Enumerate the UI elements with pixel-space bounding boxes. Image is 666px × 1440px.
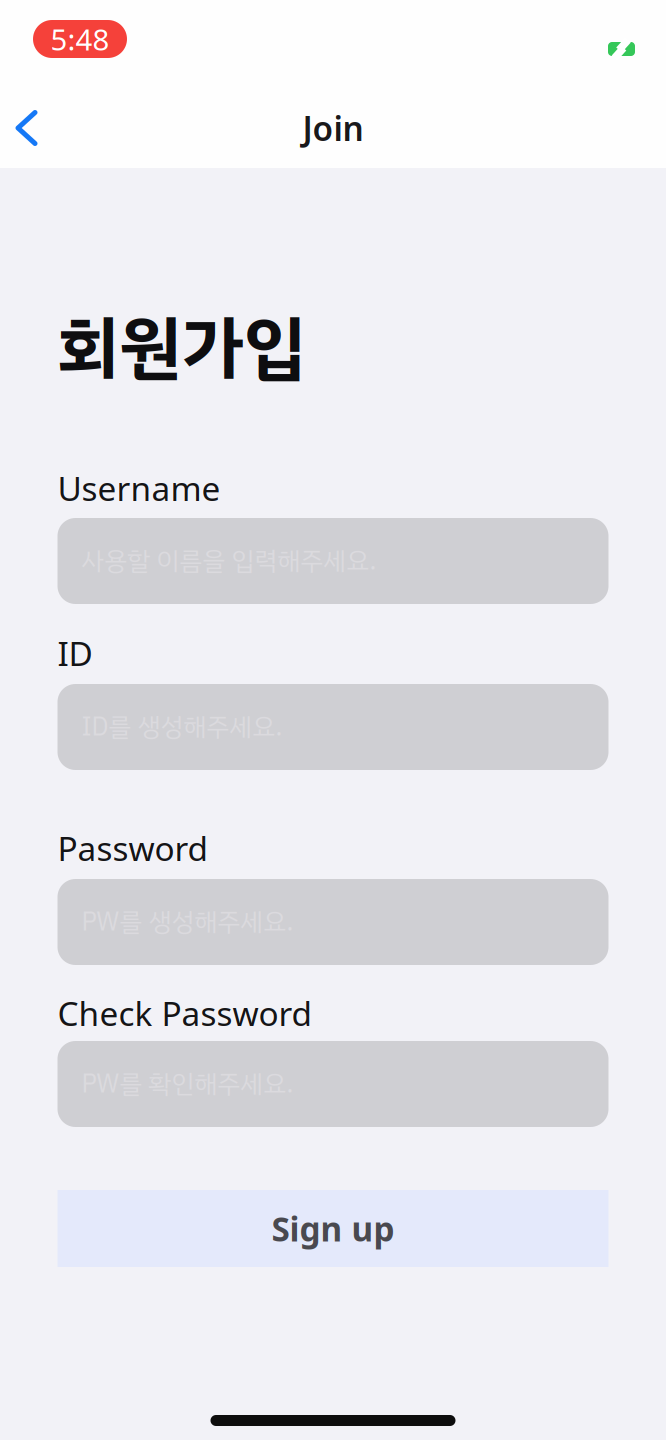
staticText: ID를 생성해주세요.: [81, 708, 282, 746]
button[interactable]: Back: [0, 110, 39, 146]
button[interactable]: 사용할 이름을 입력해주세요.: [57, 518, 608, 604]
staticText: PW를 생성해주세요.: [81, 903, 293, 941]
staticText: ID: [57, 631, 92, 675]
staticText: PW를 확인해주세요.: [81, 1065, 293, 1103]
button[interactable]: Sign up: [57, 1190, 608, 1267]
staticText: Username: [57, 466, 220, 510]
staticText: 사용할 이름을 입력해주세요.: [81, 542, 376, 580]
staticText: Check Password: [57, 991, 312, 1035]
staticText: Sign up: [271, 1206, 394, 1251]
staticText: Password: [57, 826, 208, 870]
staticText: 5:48: [50, 19, 109, 58]
staticText: Join: [302, 106, 363, 150]
staticText: 회원가입: [57, 296, 305, 400]
